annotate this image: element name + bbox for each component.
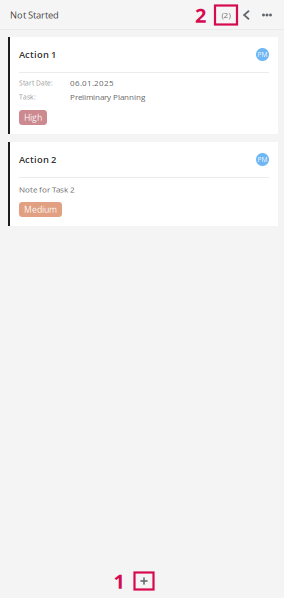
staticText: Start Date: <box>19 78 53 88</box>
staticText: 1 <box>113 567 124 595</box>
button[interactable]: Back <box>237 3 256 27</box>
staticText: Medium <box>24 204 57 215</box>
staticText: Note for Task 2 <box>19 184 75 195</box>
staticText: Preliminary Planning <box>70 92 145 102</box>
staticText: Action 2 <box>19 153 56 166</box>
staticText: PM <box>257 50 267 59</box>
staticText: (2) <box>221 10 230 20</box>
button[interactable]: Attachments <box>215 5 237 24</box>
staticText: Action 1 <box>19 48 56 61</box>
staticText: 06.01.2025 <box>70 78 114 88</box>
staticText: High <box>24 112 42 123</box>
staticText: 2 <box>195 1 206 29</box>
button[interactable]: Add <box>134 572 153 589</box>
button[interactable]: Action 2 <box>8 142 278 226</box>
button[interactable]: Action 1 <box>8 37 278 134</box>
button[interactable]: More options <box>256 3 278 27</box>
staticText: Task: <box>19 92 36 102</box>
staticText: Not Started <box>10 9 59 21</box>
staticText: PM <box>257 155 267 164</box>
